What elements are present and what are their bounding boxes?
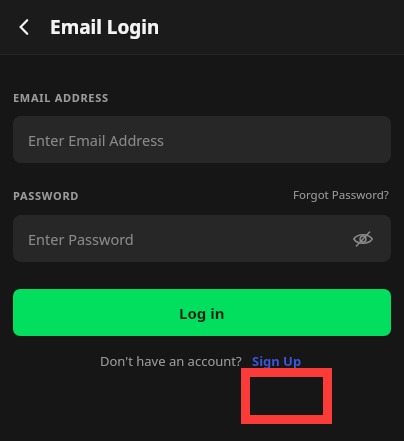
button[interactable]: Show password — [350, 226, 376, 252]
button[interactable]: Enter Email Address — [13, 116, 391, 163]
staticText: EMAIL ADDRESS — [13, 90, 109, 105]
button[interactable]: Back — [5, 8, 43, 46]
staticText: Forgot Password? — [293, 187, 389, 203]
staticText: Enter Email Address — [28, 130, 165, 150]
staticText: Sign Up — [252, 352, 302, 370]
button[interactable]: Forgot Password? — [291, 185, 391, 205]
button[interactable]: Log in — [13, 289, 391, 336]
staticText: PASSWORD — [13, 188, 80, 203]
staticText: Don't have an account? — [100, 352, 242, 370]
button[interactable]: Sign Up — [250, 350, 304, 372]
button[interactable]: Enter Password — [13, 215, 391, 262]
staticText: Enter Password — [28, 229, 134, 249]
staticText: Email Login — [50, 14, 160, 40]
staticText: Log in — [179, 303, 225, 323]
